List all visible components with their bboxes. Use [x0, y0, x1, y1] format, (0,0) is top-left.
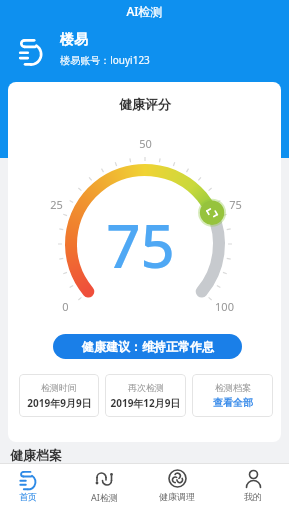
- button[interactable]: 再次检测: [105, 374, 186, 417]
- staticText: 75: [106, 204, 175, 284]
- staticText: 50: [139, 136, 152, 151]
- button[interactable]: 首页: [0, 464, 58, 507]
- staticText: 健康调理: [159, 491, 195, 502]
- staticText: 楼易账号：louyi123: [60, 53, 150, 67]
- button[interactable]: 健康调理: [147, 464, 207, 507]
- staticText: 楼易: [60, 31, 88, 49]
- button[interactable]: AI检测: [74, 464, 134, 507]
- button[interactable]: 健康建议：维持正常作息: [53, 334, 242, 359]
- staticText: 健康评分: [119, 96, 171, 112]
- staticText: 75: [229, 197, 242, 212]
- staticText: 首页: [19, 491, 37, 502]
- button[interactable]: 检测档案: [192, 374, 273, 417]
- staticText: 再次检测: [128, 382, 164, 393]
- staticText: 检测时间: [41, 382, 77, 393]
- staticText: 100: [215, 299, 234, 314]
- staticText: 2019年12月9日: [110, 396, 181, 410]
- staticText: 25: [50, 197, 63, 212]
- staticText: 健康档案: [10, 447, 62, 463]
- button[interactable]: 我的: [223, 464, 283, 507]
- staticText: AI检测: [91, 491, 118, 503]
- button[interactable]: AI检测: [0, 0, 289, 22]
- staticText: 2019年9月9日: [27, 396, 92, 410]
- staticText: 健康建议：维持正常作息: [82, 339, 214, 354]
- staticText: 我的: [244, 491, 262, 502]
- button[interactable]: 检测时间: [19, 374, 99, 417]
- staticText: 检测档案: [215, 382, 251, 393]
- staticText: 查看全部: [213, 396, 253, 409]
- staticText: AI检测: [126, 3, 163, 19]
- staticText: 0: [62, 299, 69, 314]
